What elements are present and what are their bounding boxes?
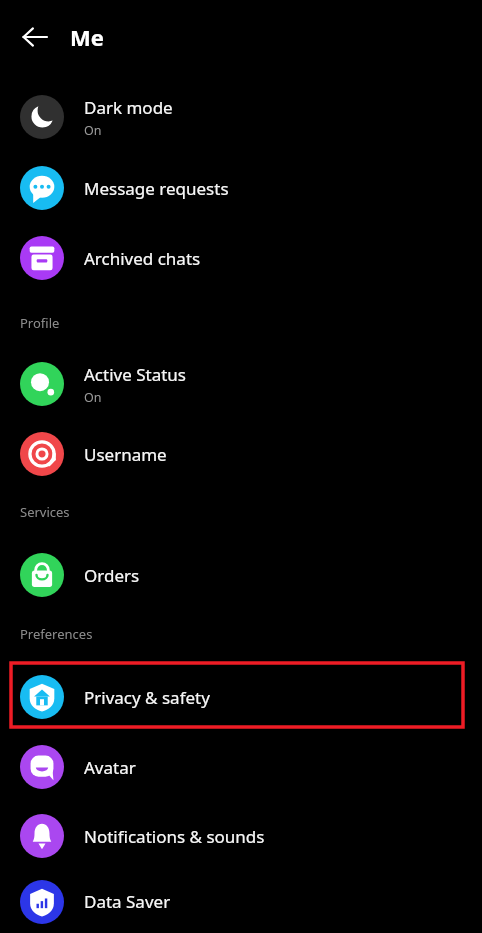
- staticText: Avatar: [84, 756, 136, 779]
- button[interactable]: Back: [12, 14, 58, 60]
- staticText: On: [84, 389, 102, 406]
- button[interactable]: Data Saver: [0, 870, 482, 933]
- staticText: Orders: [84, 564, 140, 587]
- button[interactable]: Orders: [0, 540, 482, 610]
- staticText: Username: [84, 443, 167, 466]
- button[interactable]: Notifications & sounds: [0, 802, 482, 870]
- button[interactable]: Active Status: [0, 349, 482, 419]
- button[interactable]: Message requests: [0, 153, 482, 223]
- button[interactable]: Dark mode: [0, 81, 482, 153]
- button[interactable]: Avatar: [0, 732, 482, 802]
- staticText: Profile: [20, 314, 60, 332]
- staticText: Active Status: [84, 363, 186, 386]
- staticText: Privacy & safety: [84, 686, 210, 709]
- staticText: On: [84, 122, 102, 139]
- staticText: Preferences: [20, 625, 93, 643]
- staticText: Me: [70, 22, 104, 52]
- staticText: Archived chats: [84, 247, 201, 270]
- staticText: Services: [20, 503, 70, 521]
- staticText: Message requests: [84, 177, 229, 200]
- staticText: Notifications & sounds: [84, 825, 265, 848]
- staticText: Data Saver: [84, 890, 171, 913]
- button[interactable]: Username: [0, 419, 482, 489]
- button[interactable]: Privacy & safety: [0, 662, 482, 732]
- staticText: Dark mode: [84, 96, 173, 119]
- button[interactable]: Archived chats: [0, 223, 482, 293]
